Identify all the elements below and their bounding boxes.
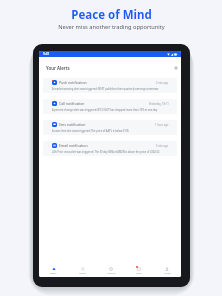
staticText: Peace of Mind (71, 7, 152, 23)
button[interactable]: Call notification (43, 99, 177, 114)
staticText: Sms notification (59, 122, 86, 127)
staticText: 5 min ago (156, 144, 169, 148)
staticText: 2 min ago (156, 81, 169, 85)
button[interactable]: Email notification (43, 141, 177, 156)
staticText: News (136, 272, 142, 275)
staticText: A market warning alert was triggered: MS… (52, 87, 159, 90)
button[interactable]: Push notification (43, 78, 177, 93)
staticText: Search (79, 272, 87, 275)
staticText: A percent change alert was triggered: BT… (52, 108, 158, 111)
button[interactable]: Alerts (39, 264, 68, 277)
button[interactable]: Markets (97, 264, 125, 277)
staticText: Push notification (59, 80, 87, 85)
staticText: Your Alerts (46, 65, 70, 71)
button[interactable]: Profile (153, 264, 181, 277)
staticText: Never miss another trading opportunity (58, 23, 165, 31)
staticText: A news limit alert was triggered: The pr… (52, 129, 129, 132)
button[interactable]: Create alert (172, 64, 180, 72)
staticText: 9:41 (43, 52, 50, 56)
staticText: Profile (164, 272, 171, 275)
staticText: 1 hour ago (155, 123, 169, 127)
button[interactable]: News (125, 264, 153, 277)
button[interactable]: Search (68, 264, 97, 277)
staticText: Yesterday, 18:11 (149, 102, 169, 106)
button[interactable]: Sms notification (43, 120, 177, 135)
staticText: Call notification (59, 101, 85, 106)
staticText: 24h Price cross alert was triggered: The… (52, 150, 160, 153)
staticText: Email notification (59, 143, 88, 148)
staticText: Alerts (50, 272, 57, 275)
staticText: Markets (107, 272, 116, 275)
